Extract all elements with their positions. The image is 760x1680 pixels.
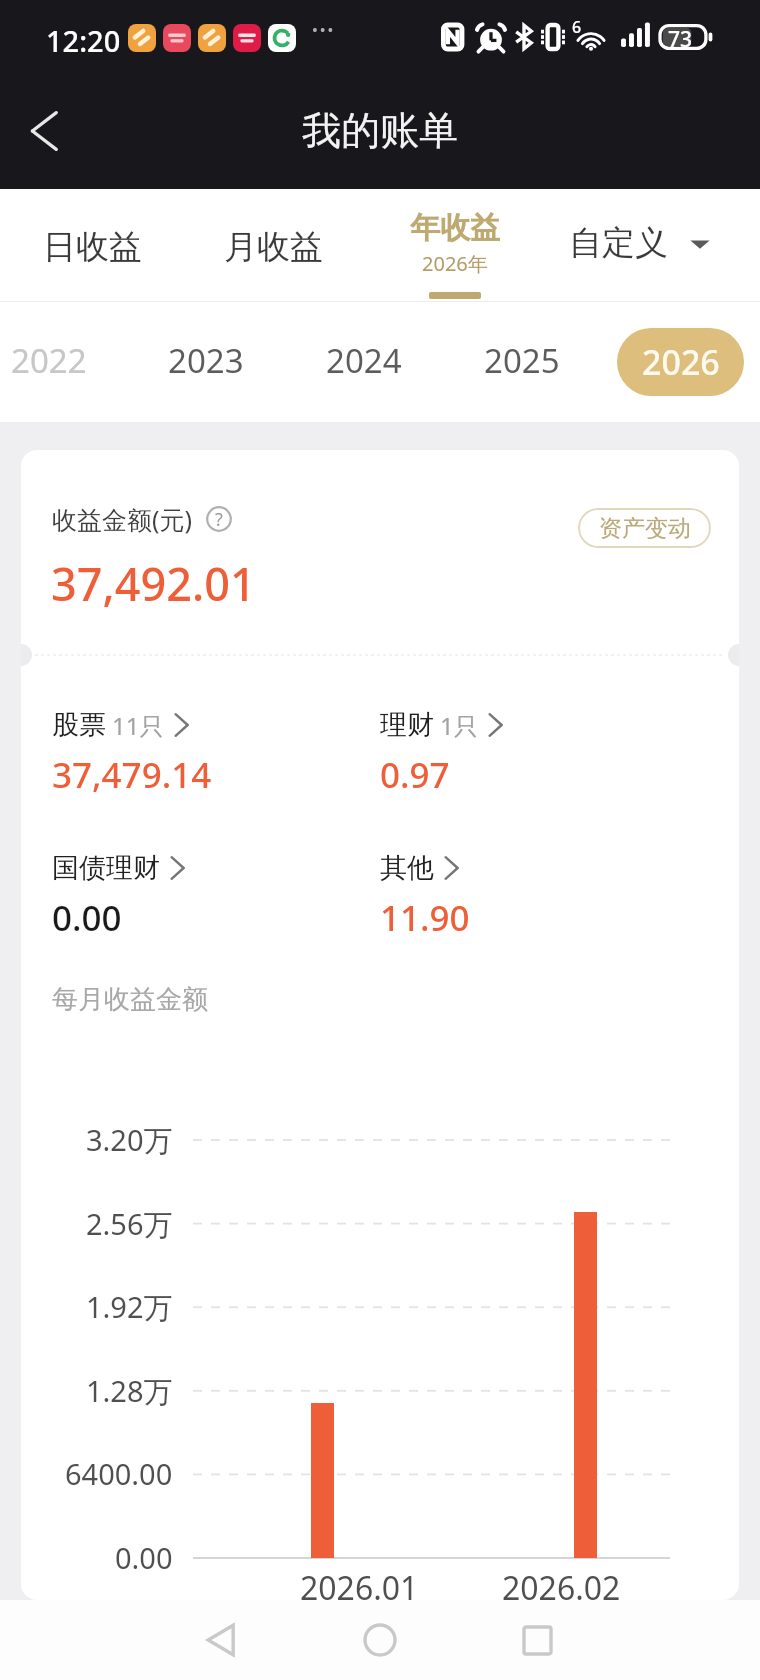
staticText: 我的账单: [302, 106, 458, 155]
staticText: 0.00: [52, 894, 122, 942]
staticText: 37,479.14: [52, 751, 212, 799]
button[interactable]: 2025: [462, 326, 582, 394]
button[interactable]: 理财: [380, 708, 680, 828]
staticText: 2026.02: [502, 1566, 621, 1600]
button[interactable]: Back: [186, 1605, 256, 1675]
button[interactable]: 2026: [617, 328, 744, 396]
staticText: 资产变动: [599, 514, 691, 543]
staticText: 2022: [11, 338, 87, 383]
staticText: 日收益: [43, 226, 142, 268]
staticText: ···: [311, 9, 335, 48]
staticText: 理财: [380, 708, 434, 742]
button[interactable]: 其他: [380, 851, 680, 971]
staticText: 2026年: [422, 250, 488, 277]
staticText: 其他: [380, 851, 434, 885]
button[interactable]: Home: [345, 1605, 415, 1675]
staticText: 1只: [440, 709, 478, 742]
button[interactable]: Recent apps: [502, 1605, 572, 1675]
staticText: 0.97: [380, 751, 450, 799]
button[interactable]: 自定义: [569, 222, 712, 264]
staticText: 6400.00: [65, 1454, 173, 1493]
staticText: 收益金额(元): [52, 502, 193, 536]
staticText: ?: [215, 507, 223, 532]
button[interactable]: 2022: [0, 326, 109, 394]
staticText: 0.00: [115, 1538, 173, 1577]
staticText: 12:20: [46, 21, 121, 60]
button[interactable]: 2024: [304, 326, 424, 394]
button[interactable]: 月收益: [215, 222, 331, 272]
staticText: 2023: [168, 338, 244, 383]
staticText: 2025: [484, 338, 560, 383]
staticText: 年收益: [410, 209, 500, 247]
staticText: 月收益: [224, 226, 323, 268]
staticText: 6: [572, 16, 582, 38]
staticText: 2026: [642, 339, 720, 385]
staticText: 3.20万: [86, 1120, 173, 1160]
button[interactable]: Back: [14, 97, 82, 165]
button[interactable]: 资产变动: [578, 508, 711, 548]
button[interactable]: 年收益: [380, 189, 530, 302]
staticText: 2.56万: [86, 1204, 173, 1244]
staticText: 1.28万: [86, 1371, 173, 1411]
button[interactable]: 股票: [52, 708, 352, 828]
staticText: 11只: [112, 709, 164, 742]
button[interactable]: 2023: [146, 326, 266, 394]
staticText: 每月收益金额: [52, 983, 208, 1016]
staticText: 1.92万: [86, 1287, 173, 1327]
staticText: 11.90: [380, 894, 470, 942]
staticText: 2026.01: [300, 1566, 419, 1600]
button[interactable]: 日收益: [34, 222, 150, 272]
staticText: 国债理财: [52, 851, 160, 885]
button[interactable]: 国债理财: [52, 851, 352, 971]
staticText: 37,492.01: [51, 553, 256, 614]
staticText: 股票: [52, 708, 106, 742]
staticText: 自定义: [569, 222, 668, 264]
staticText: 2024: [326, 338, 402, 383]
staticText: 73: [668, 25, 693, 54]
